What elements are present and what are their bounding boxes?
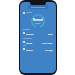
staticText: AIR MONITOR bbox=[31, 6, 46, 9]
staticText: Normal bbox=[33, 18, 43, 22]
button[interactable]: Today bbox=[23, 11, 33, 14]
staticText: 56% bbox=[48, 32, 53, 35]
staticText: Temp bbox=[26, 41, 33, 44]
staticText: Outdoor bbox=[23, 37, 32, 40]
staticText: PM2.5 bbox=[26, 48, 33, 51]
staticText: Humid bbox=[26, 32, 34, 35]
staticText: 18 AQI bbox=[45, 48, 53, 51]
button[interactable]: PM2.5 bbox=[23, 47, 53, 51]
staticText: AQI 18 bbox=[35, 22, 41, 24]
button[interactable]: AIR MONITOR bbox=[28, 5, 48, 9]
button[interactable]: Humid bbox=[23, 31, 53, 35]
staticText: Today bbox=[26, 11, 33, 14]
staticText: 1013 hPa bbox=[42, 41, 53, 44]
staticText: Air bbox=[23, 44, 26, 47]
staticText: Indoor bbox=[23, 28, 30, 31]
button[interactable]: Temp bbox=[23, 40, 53, 44]
